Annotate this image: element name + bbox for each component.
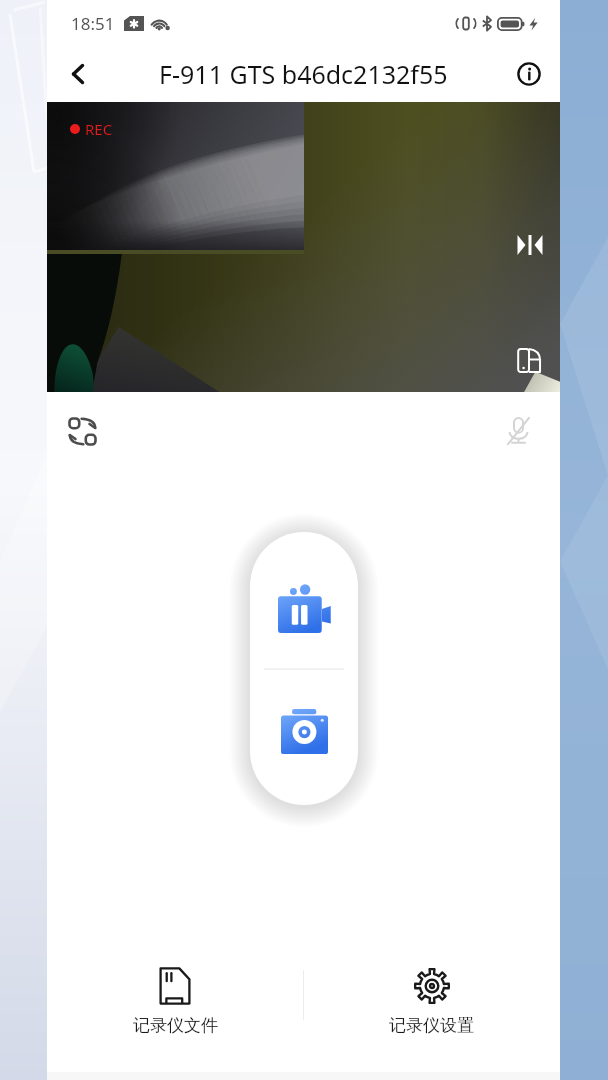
button[interactable]: Switch camera: [59, 408, 105, 454]
staticText: 记录仪文件: [133, 1015, 218, 1036]
button[interactable]: Microphone muted: [495, 408, 541, 454]
staticText: F-911 GTS b46dc2132f55: [159, 57, 448, 91]
button[interactable]: Back: [56, 52, 100, 96]
button[interactable]: Take photo: [250, 669, 358, 805]
button[interactable]: Mirror view: [509, 224, 550, 265]
staticText: REC: [85, 119, 113, 139]
button[interactable]: Record video: [250, 532, 358, 668]
button[interactable]: Device info: [507, 52, 551, 96]
button[interactable]: 记录仪文件: [47, 930, 303, 1036]
staticText: 记录仪设置: [389, 1015, 474, 1036]
button[interactable]: 记录仪设置: [303, 930, 560, 1036]
button[interactable]: Rotate screen: [510, 341, 548, 379]
staticText: 18:51: [71, 12, 115, 35]
